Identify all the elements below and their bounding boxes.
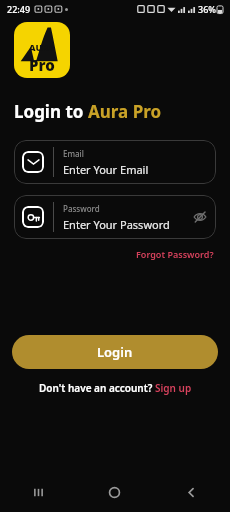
staticText: Password [63,203,100,214]
button[interactable]: Email [14,140,216,184]
button[interactable]: Login [12,335,218,369]
button[interactable]: Forgot Password? [134,246,216,262]
staticText: 22:49 [7,3,31,15]
button[interactable]: Show password [188,205,212,229]
staticText: Login [97,343,133,361]
staticText: Email [63,148,84,159]
button[interactable]: Recents [0,472,76,512]
staticText: Pro [29,55,55,75]
staticText: Enter Your Email [63,162,149,177]
staticText: Enter Your Password [63,217,170,232]
button[interactable]: Back [153,472,230,512]
staticText: Sign up [155,381,192,395]
staticText: Forgot Password? [136,248,214,260]
button[interactable]: Home [76,472,153,512]
button[interactable]: Sign up [155,381,192,395]
staticText: Login to [14,100,88,123]
staticText: AURA [29,41,55,53]
staticText: Aura Pro [88,100,162,123]
staticText: Don't have an account? [39,381,155,395]
staticText: 36% [198,3,216,15]
button[interactable]: Password [14,195,216,239]
